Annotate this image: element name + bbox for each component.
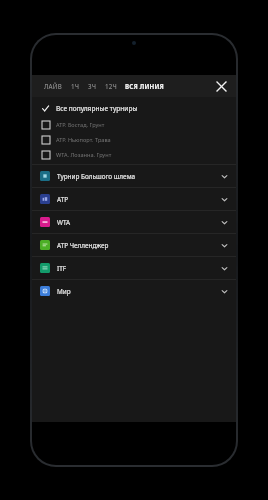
staticText: ITF — [57, 264, 221, 273]
button[interactable]: 1Ч — [67, 75, 84, 97]
staticText: ATP — [57, 195, 221, 204]
button[interactable]: WTA. Лозанна. Грунт — [32, 147, 236, 162]
button[interactable]: ATP — [32, 188, 236, 210]
button[interactable]: WTA — [32, 211, 236, 233]
button[interactable]: ATP Челленджер — [32, 234, 236, 256]
staticText: 12Ч — [105, 82, 117, 90]
staticText: Все популярные турниры — [56, 104, 138, 113]
button[interactable]: ЛАЙВ — [40, 75, 67, 97]
button[interactable]: 12Ч — [101, 75, 121, 97]
staticText: ATP Челленджер — [57, 241, 221, 250]
staticText: 1Ч — [71, 82, 80, 90]
button[interactable]: ATP. Ньюпорт. Трава — [32, 132, 236, 147]
staticText: WTA. Лозанна. Грунт — [56, 151, 112, 159]
staticText: 3Ч — [88, 82, 97, 90]
button[interactable]: Турнир Большого шлема — [32, 165, 236, 187]
staticText: WTA — [57, 218, 221, 227]
staticText: ВСЯ ЛИНИЯ — [125, 82, 165, 90]
staticText: ЛАЙВ — [44, 82, 63, 90]
button[interactable]: Все популярные турниры — [32, 100, 236, 117]
staticText: ATP. Бостад. Грунт — [56, 121, 105, 129]
staticText: Мир — [57, 287, 221, 296]
button[interactable]: Мир — [32, 280, 236, 302]
staticText: Турнир Большого шлема — [57, 172, 221, 181]
button[interactable]: 3Ч — [84, 75, 101, 97]
button[interactable]: ATP. Бостад. Грунт — [32, 117, 236, 132]
button[interactable]: ITF — [32, 257, 236, 279]
button[interactable]: ВСЯ ЛИНИЯ — [121, 75, 169, 97]
button[interactable]: Закрыть — [212, 77, 230, 95]
staticText: ATP. Ньюпорт. Трава — [56, 136, 111, 144]
